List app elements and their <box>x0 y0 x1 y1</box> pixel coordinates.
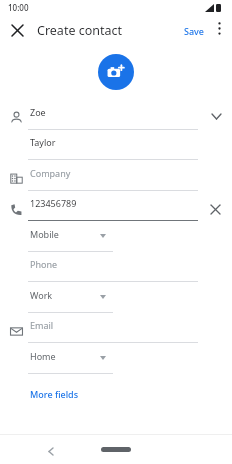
staticText: More fields <box>30 388 79 400</box>
button[interactable]: Home <box>101 447 131 452</box>
button[interactable]: Save <box>181 21 208 41</box>
button[interactable]: Zoe <box>28 104 200 130</box>
button[interactable]: Back <box>38 438 64 464</box>
button[interactable]: Clear phone number <box>205 199 225 219</box>
staticText: Email <box>30 319 54 331</box>
staticText: Taylor <box>30 136 56 148</box>
staticText: Save <box>184 25 205 37</box>
staticText: Create contact <box>37 22 123 39</box>
staticText: 10:00 <box>8 2 29 13</box>
staticText: Mobile <box>30 228 59 240</box>
button[interactable]: Phone <box>28 256 200 282</box>
staticText: Work <box>30 289 53 301</box>
button[interactable]: Add photo <box>98 54 134 90</box>
staticText: Zoe <box>30 106 46 118</box>
button[interactable]: Home <box>28 348 116 374</box>
staticText: Home <box>30 350 56 362</box>
button[interactable]: Email <box>28 317 200 343</box>
staticText: Company <box>30 167 71 179</box>
button[interactable]: More options <box>208 17 230 39</box>
button[interactable]: Taylor <box>28 134 200 160</box>
staticText: 123456789 <box>30 197 77 209</box>
button[interactable]: 123456789 <box>28 195 200 221</box>
button[interactable]: More fields <box>26 384 83 404</box>
button[interactable]: Mobile <box>28 226 116 252</box>
button[interactable]: Company <box>28 165 200 191</box>
button[interactable]: Work <box>28 287 116 313</box>
staticText: Phone <box>30 258 58 270</box>
button[interactable]: Expand name fields <box>207 107 225 125</box>
button[interactable]: Close <box>3 16 31 44</box>
